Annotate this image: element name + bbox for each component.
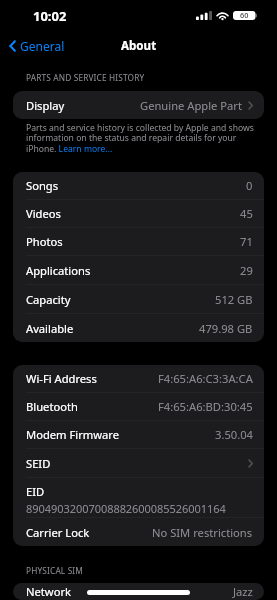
staticText: About bbox=[121, 38, 157, 54]
staticText: 512 GB bbox=[215, 292, 253, 307]
staticText: Videos bbox=[26, 206, 61, 221]
button[interactable]: EID bbox=[13, 478, 264, 517]
button[interactable]: Songs bbox=[13, 172, 264, 199]
button[interactable]: General bbox=[0, 33, 73, 59]
staticText: Parts and service history is collected b… bbox=[26, 122, 266, 155]
staticText: 60 bbox=[240, 10, 249, 20]
staticText: Applications bbox=[26, 263, 91, 278]
button[interactable]: SEID bbox=[13, 449, 264, 477]
staticText: 0 bbox=[246, 178, 253, 193]
staticText: 45 bbox=[240, 206, 253, 221]
button[interactable]: Modem Firmware bbox=[13, 421, 264, 448]
button[interactable]: Carrier Lock bbox=[13, 518, 264, 546]
staticText: Wi-Fi Address bbox=[26, 371, 97, 386]
staticText: 89049032007008882600085526001164 bbox=[26, 501, 226, 516]
staticText: Display bbox=[26, 98, 65, 113]
staticText: SEID bbox=[26, 456, 51, 471]
staticText: 3.50.04 bbox=[215, 427, 253, 442]
staticText: PHYSICAL SIM bbox=[26, 565, 83, 576]
button[interactable]: Bluetooth bbox=[13, 393, 264, 420]
staticText: Carrier Lock bbox=[26, 525, 90, 540]
staticText: No SIM restrictions bbox=[152, 525, 253, 540]
staticText: F4:65:A6:C3:3A:CA bbox=[158, 371, 253, 386]
button[interactable]: Network bbox=[13, 583, 264, 600]
staticText: Capacity bbox=[26, 292, 71, 307]
button[interactable]: Videos bbox=[13, 200, 264, 227]
staticText: Available bbox=[26, 321, 74, 336]
staticText: Jazz bbox=[233, 584, 253, 599]
staticText: EID bbox=[26, 484, 45, 499]
staticText: 10:02 bbox=[33, 7, 67, 25]
staticText: Photos bbox=[26, 234, 63, 249]
button[interactable]: Capacity bbox=[13, 285, 264, 313]
button[interactable]: Display bbox=[13, 91, 264, 119]
button[interactable]: Photos bbox=[13, 228, 264, 255]
staticText: 29 bbox=[240, 263, 253, 278]
staticText: General bbox=[20, 38, 65, 54]
staticText: Network bbox=[26, 584, 72, 599]
staticText: PARTS AND SERVICE HISTORY bbox=[26, 72, 145, 83]
staticText: 71 bbox=[240, 234, 253, 249]
staticText: Songs bbox=[26, 178, 59, 193]
button[interactable]: Applications bbox=[13, 256, 264, 284]
staticText: 479.98 GB bbox=[199, 321, 253, 336]
staticText: Genuine Apple Part bbox=[140, 98, 243, 113]
button[interactable]: Available bbox=[13, 314, 264, 342]
button[interactable]: Wi-Fi Address bbox=[13, 365, 264, 392]
staticText: F4:65:A6:BD:30:45 bbox=[158, 399, 253, 414]
staticText: Bluetooth bbox=[26, 399, 78, 414]
staticText: Modem Firmware bbox=[26, 427, 120, 442]
